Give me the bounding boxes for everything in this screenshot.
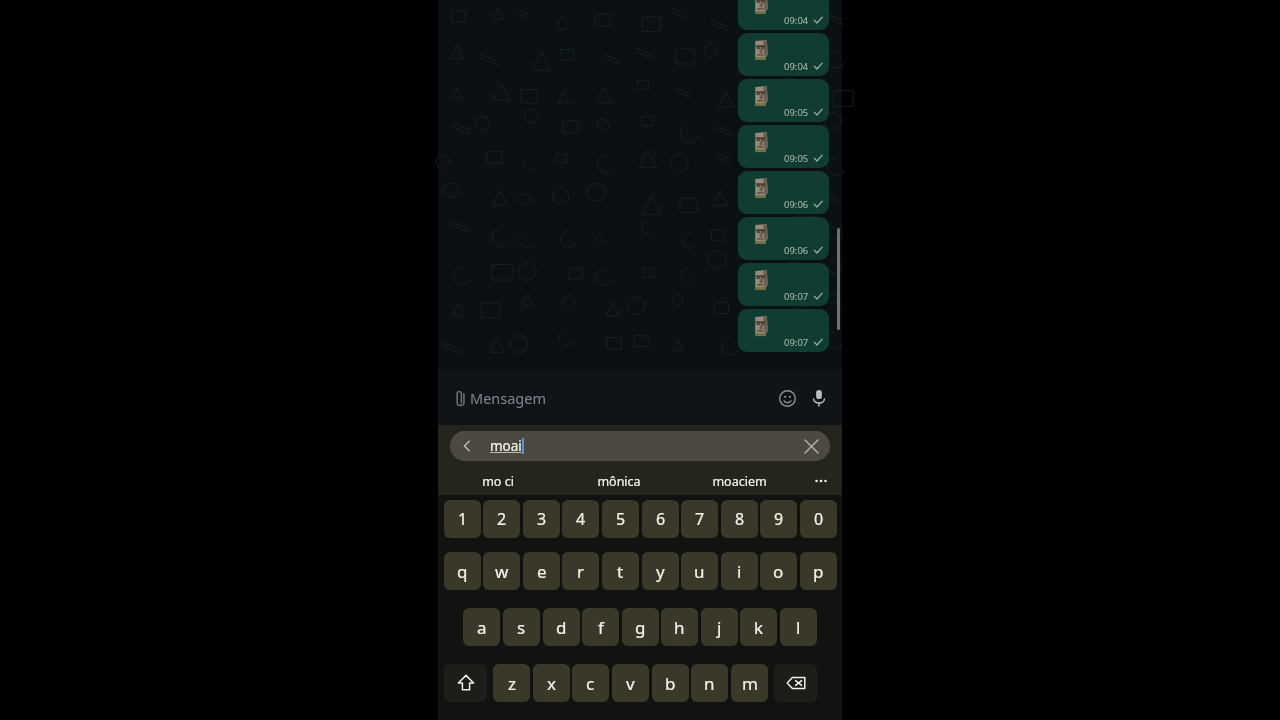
- button[interactable]: mo ci: [438, 467, 558, 495]
- button[interactable]: 09:07: [738, 309, 829, 352]
- button[interactable]: a: [463, 608, 500, 646]
- staticText: m: [742, 672, 758, 695]
- staticText: q: [457, 560, 468, 583]
- staticText: 09:05: [784, 106, 809, 119]
- button[interactable]: 6: [642, 500, 679, 538]
- button[interactable]: j: [701, 608, 738, 646]
- button[interactable]: 09:07: [738, 263, 829, 306]
- button[interactable]: Voice message: [804, 383, 834, 413]
- button[interactable]: o: [760, 552, 797, 590]
- staticText: t: [617, 560, 624, 583]
- staticText: 09:06: [784, 198, 809, 211]
- button[interactable]: moaciem: [679, 467, 800, 495]
- staticText: mo ci: [482, 473, 514, 490]
- staticText: 09:07: [784, 336, 809, 349]
- staticText: v: [626, 672, 635, 695]
- button[interactable]: Clear: [798, 433, 824, 459]
- button[interactable]: t: [602, 552, 639, 590]
- button[interactable]: 7: [681, 500, 718, 538]
- staticText: z: [508, 672, 516, 695]
- button[interactable]: 9: [760, 500, 797, 538]
- button[interactable]: 09:04: [738, 0, 829, 30]
- staticText: 09:06: [784, 244, 809, 257]
- staticText: 4: [576, 508, 586, 530]
- staticText: o: [773, 560, 784, 583]
- button[interactable]: z: [493, 664, 530, 702]
- staticText: d: [556, 616, 567, 639]
- button[interactable]: 09:06: [738, 217, 829, 260]
- button[interactable]: h: [661, 608, 698, 646]
- button[interactable]: 2: [483, 500, 520, 538]
- staticText: j: [717, 616, 722, 639]
- staticText: g: [635, 616, 646, 639]
- button[interactable]: f: [582, 608, 619, 646]
- button[interactable]: 0: [800, 500, 837, 538]
- button[interactable]: 09:05: [738, 125, 829, 168]
- staticText: 5: [616, 508, 626, 530]
- button[interactable]: Shift: [444, 664, 487, 702]
- button[interactable]: 09:04: [738, 33, 829, 76]
- button[interactable]: m: [731, 664, 768, 702]
- staticText: mônica: [597, 473, 641, 490]
- staticText: r: [577, 560, 585, 583]
- staticText: x: [547, 672, 556, 695]
- button[interactable]: p: [800, 552, 837, 590]
- button[interactable]: 4: [562, 500, 599, 538]
- button[interactable]: r: [562, 552, 599, 590]
- button[interactable]: 09:06: [738, 171, 829, 214]
- staticText: 09:07: [784, 290, 809, 303]
- button[interactable]: v: [612, 664, 649, 702]
- button[interactable]: c: [572, 664, 609, 702]
- button[interactable]: More: [800, 467, 842, 495]
- button[interactable]: 8: [721, 500, 758, 538]
- button[interactable]: u: [681, 552, 718, 590]
- staticText: s: [517, 616, 526, 639]
- staticText: 2: [497, 508, 507, 530]
- staticText: 8: [735, 508, 745, 530]
- staticText: 0: [814, 508, 824, 530]
- button[interactable]: k: [740, 608, 777, 646]
- button[interactable]: s: [503, 608, 540, 646]
- staticText: 1: [458, 508, 468, 530]
- staticText: 3: [537, 508, 547, 530]
- button[interactable]: e: [523, 552, 560, 590]
- staticText: moai: [490, 437, 522, 455]
- staticText: u: [694, 560, 705, 583]
- staticText: e: [537, 560, 547, 583]
- staticText: n: [704, 672, 715, 695]
- staticText: b: [665, 672, 676, 695]
- staticText: Mensagem: [470, 388, 547, 408]
- staticText: a: [477, 616, 487, 639]
- button[interactable]: Emoji: [772, 383, 802, 413]
- button[interactable]: 5: [602, 500, 639, 538]
- staticText: p: [813, 560, 824, 583]
- staticText: y: [656, 560, 665, 583]
- button[interactable]: 09:05: [738, 79, 829, 122]
- staticText: h: [674, 616, 685, 639]
- button[interactable]: d: [543, 608, 580, 646]
- staticText: i: [737, 560, 742, 583]
- staticText: f: [598, 616, 604, 639]
- button[interactable]: Backspace: [774, 664, 817, 702]
- button[interactable]: Attach: [444, 382, 476, 414]
- staticText: 09:04: [784, 14, 809, 27]
- staticText: w: [495, 560, 509, 583]
- button[interactable]: g: [622, 608, 659, 646]
- button[interactable]: y: [642, 552, 679, 590]
- button[interactable]: i: [721, 552, 758, 590]
- button[interactable]: 3: [523, 500, 560, 538]
- staticText: 09:04: [784, 60, 809, 73]
- button[interactable]: w: [483, 552, 520, 590]
- button[interactable]: l: [780, 608, 817, 646]
- button[interactable]: Back: [450, 431, 830, 461]
- button[interactable]: n: [691, 664, 728, 702]
- button[interactable]: x: [533, 664, 570, 702]
- button[interactable]: mônica: [558, 467, 679, 495]
- button[interactable]: q: [444, 552, 481, 590]
- button[interactable]: Back: [454, 433, 480, 459]
- staticText: 7: [695, 508, 705, 530]
- button[interactable]: b: [652, 664, 689, 702]
- button[interactable]: 1: [444, 500, 481, 538]
- staticText: k: [754, 616, 764, 639]
- staticText: moaciem: [712, 473, 767, 490]
